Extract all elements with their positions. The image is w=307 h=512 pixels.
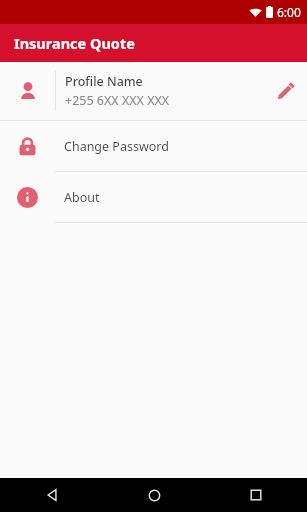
button[interactable]: Recent apps bbox=[205, 478, 307, 512]
button[interactable]: Change Password bbox=[0, 121, 307, 171]
staticText: +255 6XX XXX XXX bbox=[65, 92, 170, 109]
staticText: 6:00 bbox=[277, 4, 301, 20]
button[interactable]: Edit profile bbox=[263, 69, 307, 113]
button[interactable]: Profile Name bbox=[0, 62, 307, 120]
staticText: About bbox=[64, 189, 100, 206]
button[interactable]: Home bbox=[103, 478, 205, 512]
staticText: Profile Name bbox=[65, 73, 143, 90]
staticText: Insurance Quote bbox=[14, 33, 135, 53]
button[interactable]: About bbox=[0, 172, 307, 222]
staticText: Change Password bbox=[64, 138, 169, 155]
button[interactable]: Back bbox=[0, 478, 103, 512]
